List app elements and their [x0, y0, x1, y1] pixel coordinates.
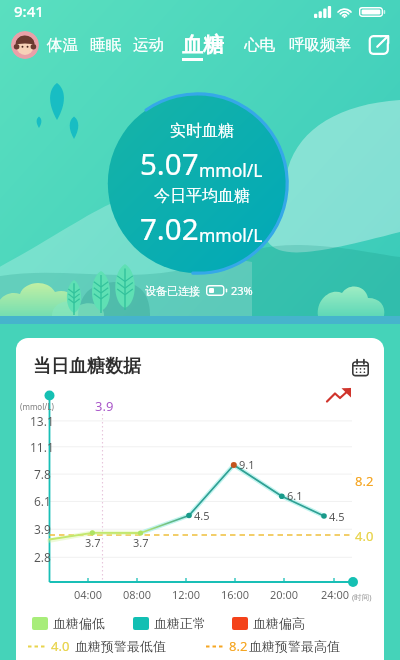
staticText: 23% — [231, 283, 253, 298]
staticText: 7.8 — [34, 466, 51, 482]
staticText: 8.2 — [229, 637, 248, 655]
staticText: 2.8 — [34, 549, 51, 565]
staticText: 设备已连接 — [145, 284, 200, 298]
button[interactable]: 血糖 — [170, 28, 236, 62]
button[interactable]: 睡眠 — [84, 28, 127, 62]
staticText: 24:00 — [321, 587, 350, 602]
staticText: 7.02 — [140, 208, 199, 248]
staticText: 08:00 — [123, 587, 152, 602]
button[interactable]: Share — [364, 30, 394, 60]
staticText: 呼吸频率 — [289, 35, 351, 55]
staticText: 5.07 — [140, 143, 199, 183]
staticText: 11.1 — [30, 439, 54, 455]
staticText: 16:00 — [221, 587, 250, 602]
staticText: 血糖 — [182, 32, 224, 58]
staticText: 4.0 — [51, 637, 70, 655]
staticText: mmol/L — [199, 158, 263, 182]
staticText: 血糖预警最高值 — [249, 638, 340, 654]
button[interactable]: 体温 — [41, 28, 84, 62]
staticText: 运动 — [133, 35, 164, 55]
staticText: 13.1 — [30, 413, 54, 429]
staticText: 20:00 — [270, 587, 299, 602]
staticText: 今日平均血糖 — [154, 186, 250, 206]
staticText: 3.7 — [85, 535, 101, 550]
staticText: (时间) — [352, 592, 372, 602]
staticText: 体温 — [47, 35, 78, 55]
staticText: 睡眠 — [90, 35, 121, 55]
staticText: 血糖偏低 — [53, 615, 105, 631]
staticText: 当日血糖数据 — [33, 355, 141, 378]
button[interactable]: Profile — [11, 31, 39, 59]
staticText: 4.5 — [329, 509, 345, 524]
staticText: mmol/L — [199, 223, 263, 247]
staticText: 9.1 — [239, 457, 255, 472]
staticText: 4.5 — [194, 508, 210, 523]
staticText: 血糖预警最低值 — [75, 638, 166, 654]
staticText: 12:00 — [172, 587, 201, 602]
staticText: 血糖正常 — [154, 615, 206, 631]
staticText: 实时血糖 — [170, 121, 234, 141]
staticText: 血糖偏高 — [253, 615, 305, 631]
button[interactable]: 运动 — [127, 28, 170, 62]
staticText: (mmol/L) — [20, 401, 54, 412]
staticText: 3.9 — [95, 397, 114, 415]
staticText: 9:41 — [14, 1, 44, 21]
staticText: 3.7 — [133, 535, 149, 550]
staticText: 04:00 — [74, 587, 103, 602]
button[interactable]: Select date — [347, 354, 373, 380]
staticText: 3.9 — [34, 521, 51, 537]
staticText: 心电 — [244, 35, 275, 55]
staticText: 6.1 — [287, 488, 303, 503]
button[interactable]: 呼吸频率 — [283, 28, 357, 62]
staticText: 4.0 — [355, 527, 374, 545]
staticText: 8.2 — [355, 472, 374, 490]
staticText: 6.1 — [34, 493, 51, 509]
button[interactable]: 心电 — [236, 28, 283, 62]
